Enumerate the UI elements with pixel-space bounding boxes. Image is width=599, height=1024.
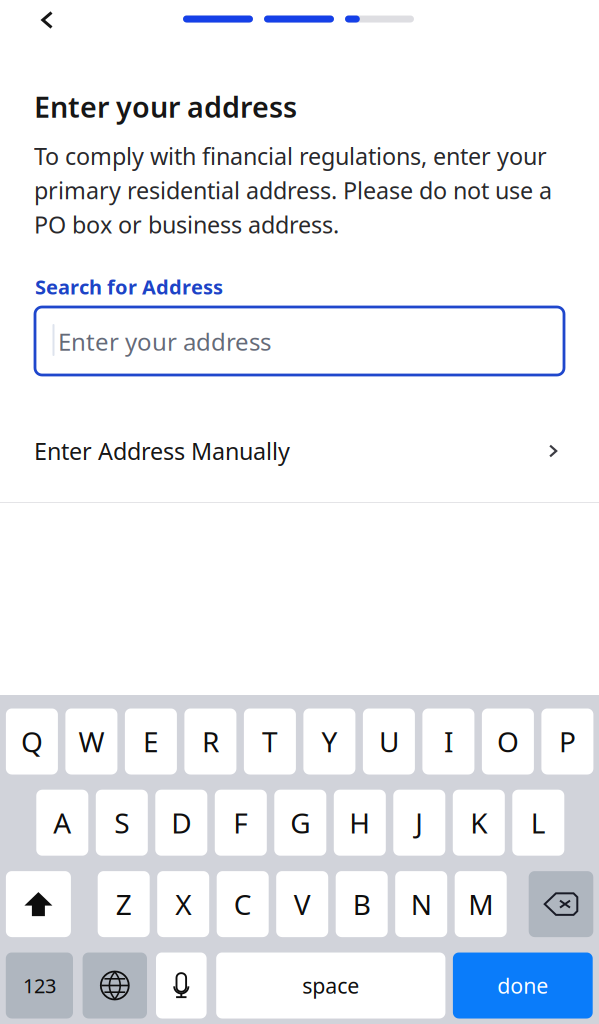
- staticText: G: [290, 804, 310, 842]
- staticText: B: [353, 885, 371, 923]
- staticText: R: [202, 722, 219, 760]
- button[interactable]: 123: [6, 952, 73, 1018]
- button[interactable]: G: [274, 790, 326, 856]
- button[interactable]: X: [157, 871, 209, 937]
- staticText: 123: [23, 972, 56, 999]
- button[interactable]: Next keyboard: [83, 952, 147, 1018]
- staticText: W: [78, 722, 104, 760]
- button[interactable]: Q: [6, 708, 58, 774]
- button[interactable]: D: [155, 790, 207, 856]
- button[interactable]: O: [482, 708, 534, 774]
- staticText: U: [379, 722, 399, 760]
- button[interactable]: E: [125, 708, 177, 774]
- staticText: Z: [116, 885, 132, 923]
- button[interactable]: U: [363, 708, 415, 774]
- staticText: M: [468, 885, 493, 923]
- staticText: X: [175, 885, 191, 923]
- button[interactable]: Z: [98, 871, 150, 937]
- button[interactable]: V: [276, 871, 328, 937]
- button[interactable]: P: [541, 708, 593, 774]
- button[interactable]: S: [96, 790, 148, 856]
- button[interactable]: M: [455, 871, 507, 937]
- button[interactable]: H: [334, 790, 386, 856]
- staticText: P: [559, 722, 576, 760]
- staticText: Y: [321, 722, 337, 760]
- staticText: Enter your address: [34, 87, 297, 126]
- button[interactable]: K: [453, 790, 505, 856]
- staticText: T: [262, 722, 278, 760]
- button[interactable]: C: [217, 871, 269, 937]
- button[interactable]: done: [453, 952, 593, 1018]
- button[interactable]: Shift: [6, 871, 71, 937]
- staticText: C: [234, 885, 252, 923]
- button[interactable]: N: [395, 871, 447, 937]
- staticText: H: [349, 804, 370, 842]
- staticText: K: [470, 804, 487, 842]
- button[interactable]: J: [393, 790, 445, 856]
- staticText: Enter Address Manually: [34, 435, 290, 467]
- staticText: Enter your address: [58, 325, 271, 358]
- button[interactable]: Back: [23, 0, 71, 41]
- staticText: V: [294, 885, 311, 923]
- button[interactable]: Y: [303, 708, 355, 774]
- staticText: I: [444, 722, 453, 760]
- staticText: E: [143, 722, 159, 760]
- button[interactable]: W: [65, 708, 117, 774]
- staticText: Search for Address: [35, 273, 223, 300]
- staticText: D: [171, 804, 191, 842]
- staticText: A: [53, 804, 71, 842]
- staticText: O: [497, 722, 519, 760]
- staticText: space: [302, 971, 359, 1000]
- button[interactable]: L: [512, 790, 564, 856]
- staticText: L: [531, 804, 546, 842]
- button[interactable]: F: [215, 790, 267, 856]
- staticText: F: [233, 804, 248, 842]
- staticText: J: [415, 804, 423, 842]
- button[interactable]: I: [422, 708, 474, 774]
- button[interactable]: Delete: [529, 871, 593, 937]
- staticText: To comply with financial regulations, en…: [34, 140, 552, 240]
- staticText: S: [114, 804, 129, 842]
- staticText: done: [497, 971, 548, 1000]
- button[interactable]: Dictate: [156, 952, 207, 1018]
- button[interactable]: A: [36, 790, 88, 856]
- button[interactable]: Enter Address Manually: [0, 418, 599, 484]
- staticText: Q: [21, 722, 43, 760]
- button[interactable]: B: [336, 871, 388, 937]
- button[interactable]: T: [244, 708, 296, 774]
- button[interactable]: R: [184, 708, 236, 774]
- staticText: N: [411, 885, 432, 923]
- button[interactable]: space: [216, 952, 445, 1018]
